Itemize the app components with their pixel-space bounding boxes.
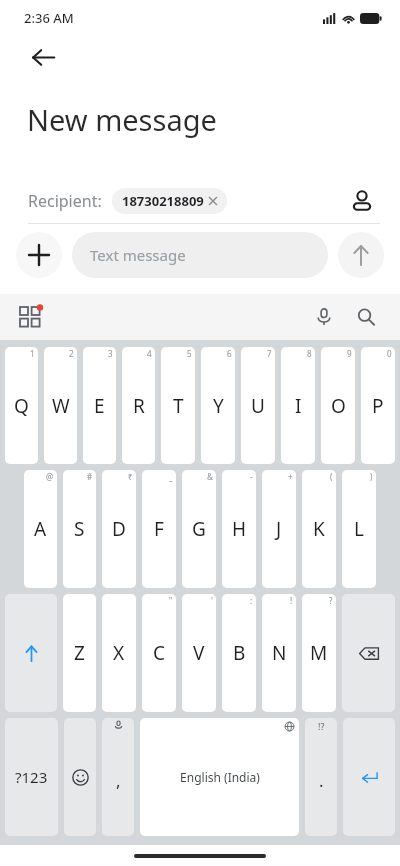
staticText: !? [318,720,325,732]
staticText: I [295,393,302,419]
staticText: ! [290,595,293,606]
button[interactable]: D [102,470,136,588]
staticText: : [250,595,253,606]
staticText: B [233,640,246,666]
staticText: ?123 [15,767,48,787]
button[interactable]: Text message [72,232,328,278]
button[interactable]: 18730218809 [112,188,227,214]
staticText: H [232,516,247,542]
staticText: S [74,516,85,542]
staticText: L [354,516,364,542]
staticText: 1 [30,348,35,359]
button[interactable]: L [342,470,376,588]
staticText: _ [169,471,173,482]
staticText: 3 [108,348,113,359]
button[interactable]: Contacts [342,181,382,221]
button[interactable]: Back [22,36,64,78]
staticText: Text message [90,245,186,265]
staticText: Recipient: [28,190,102,212]
button[interactable]: E [83,347,116,464]
staticText: N [272,640,287,666]
button[interactable]: R [122,347,155,464]
button[interactable]: Voice input [306,299,342,335]
staticText: New message [27,100,217,139]
staticText: @ [46,471,54,482]
staticText: D [112,516,126,542]
button[interactable]: P [361,347,395,464]
staticText: - [250,471,253,482]
button[interactable]: O [321,347,355,464]
staticText: 4 [147,348,152,359]
staticText: # [87,471,93,482]
button[interactable]: Enter [343,718,395,836]
button[interactable]: G [182,470,216,588]
button[interactable]: T [161,347,195,464]
button[interactable]: X [102,594,136,712]
button[interactable]: Backspace [342,594,395,712]
button[interactable]: F [142,470,176,588]
button[interactable]: Shift [5,594,57,712]
staticText: K [313,516,325,542]
staticText: + [288,471,293,482]
staticText: 2 [69,348,74,359]
staticText: 8 [307,348,312,359]
staticText: O [331,393,346,419]
staticText: U [251,393,265,419]
button[interactable]: !? [305,718,337,836]
button[interactable]: Y [201,347,235,464]
button[interactable]: M [302,594,336,712]
button[interactable]: V [182,594,216,712]
button[interactable]: Send [338,232,384,278]
button[interactable]: English (India) [140,718,299,836]
staticText: J [276,516,282,542]
staticText: X [113,640,125,666]
button[interactable]: Emoji [64,718,96,836]
button[interactable]: K [302,470,336,588]
staticText: M [310,640,328,666]
staticText: 6 [227,348,232,359]
button[interactable]: B [222,594,256,712]
staticText: , [116,769,121,792]
staticText: 5 [187,348,192,359]
staticText: ₹ [128,471,133,482]
staticText: W [52,393,70,419]
button[interactable]: C [142,594,176,712]
staticText: 7 [267,348,272,359]
staticText: T [173,393,184,419]
staticText: English (India) [180,769,260,785]
staticText: R [133,393,145,419]
staticText: " [169,595,173,606]
button[interactable]: ?123 [5,718,58,836]
button[interactable]: N [262,594,296,712]
button[interactable]: S [63,470,96,588]
button[interactable]: J [262,470,296,588]
button[interactable]: Apps [12,299,48,335]
button[interactable]: A [24,470,57,588]
staticText: ) [370,471,373,482]
staticText: C [153,640,166,666]
button[interactable]: Q [5,347,38,464]
staticText: 9 [347,348,352,359]
staticText: G [192,516,206,542]
staticText: ( [330,471,333,482]
button[interactable]: H [222,470,256,588]
staticText: Q [14,393,29,419]
button[interactable]: Add attachment [16,232,62,278]
staticText: ' [211,595,213,606]
staticText: 0 [387,348,392,359]
staticText: E [94,393,105,419]
staticText: 18730218809 [122,192,204,210]
staticText: P [372,393,384,419]
button[interactable]: W [44,347,77,464]
staticText: V [193,640,205,666]
staticText: . [319,769,324,792]
staticText: & [207,471,213,482]
button[interactable]: Z [63,594,96,712]
button[interactable]: Search [348,299,384,335]
button[interactable]: U [241,347,275,464]
staticText: 2:36 AM [24,9,74,27]
button[interactable]: , [102,718,134,836]
staticText: F [154,516,164,542]
staticText: Y [213,393,224,419]
button[interactable]: I [281,347,315,464]
